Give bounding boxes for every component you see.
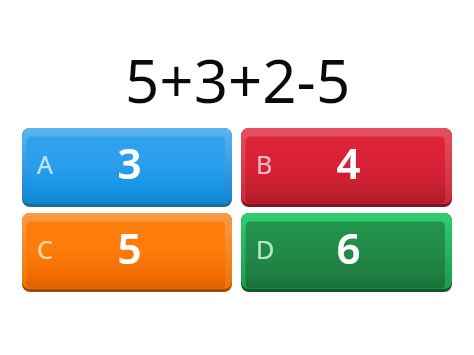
staticText: D (256, 232, 275, 266)
staticText: 6 (336, 219, 361, 276)
staticText: 3 (117, 134, 142, 191)
staticText: 5 (117, 219, 142, 276)
button[interactable]: A (22, 128, 232, 207)
staticText: 5+3+2-5 (125, 39, 351, 121)
staticText: 4 (336, 134, 361, 191)
button[interactable]: B (241, 128, 452, 207)
staticText: C (37, 232, 53, 266)
staticText: B (256, 147, 273, 181)
button[interactable]: C (22, 213, 232, 292)
button[interactable]: D (241, 213, 452, 292)
staticText: A (37, 147, 53, 181)
